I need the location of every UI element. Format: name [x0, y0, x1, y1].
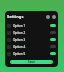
- button[interactable]: Option 5: [5, 50, 58, 57]
- staticText: Settings: [7, 14, 24, 19]
- button[interactable]: Option 4: [5, 43, 58, 50]
- staticText: Option 1: [13, 24, 26, 28]
- button[interactable]: Option 3: [5, 36, 58, 43]
- staticText: Option 4: [13, 45, 26, 49]
- button[interactable]: Option 2: [5, 29, 58, 36]
- staticText: Option 3: [13, 38, 26, 42]
- button[interactable]: More: [52, 15, 56, 19]
- button[interactable]: Option 1: [5, 22, 58, 29]
- staticText: Option 2: [13, 31, 26, 35]
- staticText: Save: [28, 60, 35, 64]
- button[interactable]: Save: [10, 60, 53, 64]
- staticText: Option 5: [13, 52, 26, 56]
- button[interactable]: Search: [46, 15, 50, 19]
